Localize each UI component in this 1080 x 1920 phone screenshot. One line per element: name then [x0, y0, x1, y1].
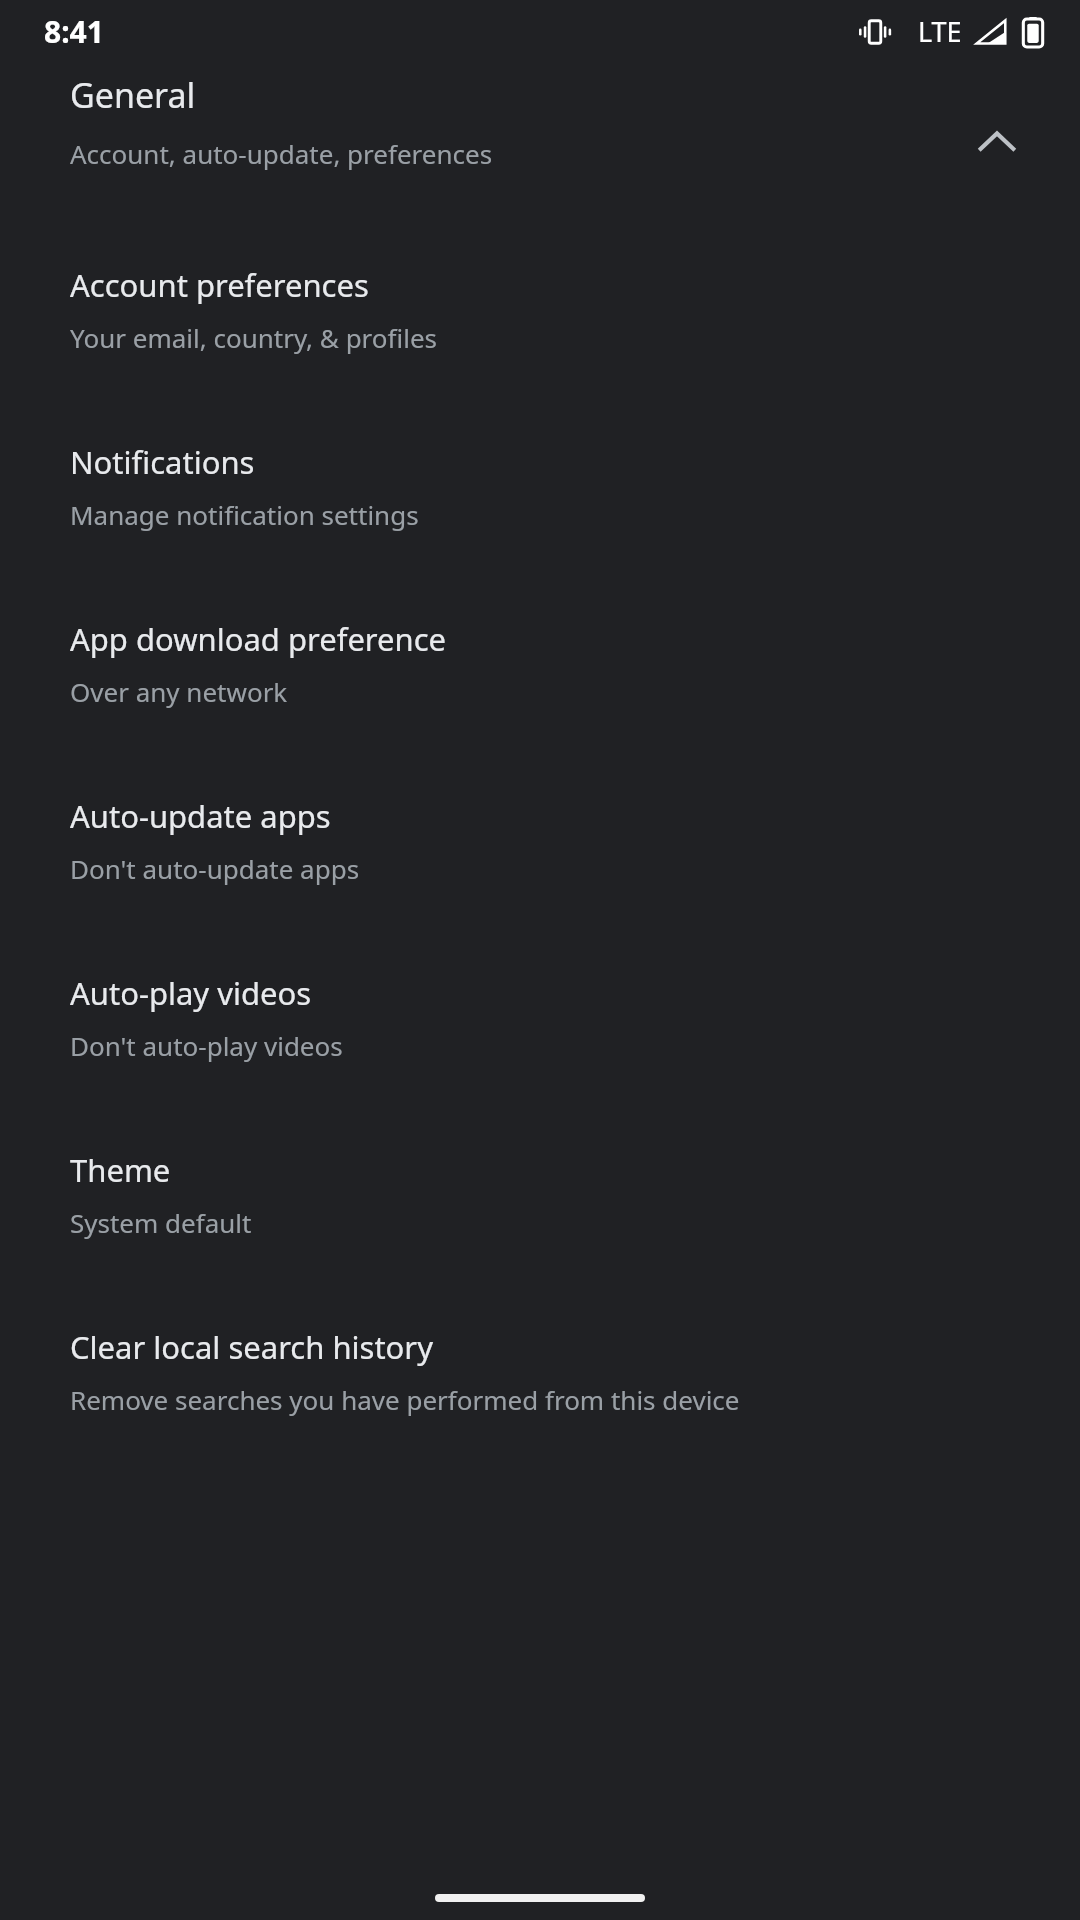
staticText: Don't auto-play videos	[70, 1028, 343, 1063]
button[interactable]: Clear local search history	[0, 1326, 1080, 1417]
button[interactable]: Theme	[0, 1149, 1080, 1240]
staticText: Clear local search history	[70, 1326, 433, 1368]
staticText: Account, auto-update, preferences	[70, 136, 493, 171]
button[interactable]: Notifications	[0, 441, 1080, 532]
staticText: 8:41	[44, 11, 104, 52]
button[interactable]: Account preferences	[0, 264, 1080, 355]
staticText: App download preference	[70, 618, 447, 660]
staticText: General	[70, 72, 196, 118]
staticText: System default	[70, 1205, 252, 1240]
staticText: Account preferences	[70, 264, 369, 306]
button[interactable]: Collapse General	[964, 110, 1030, 176]
staticText: Your email, country, & profiles	[70, 320, 438, 355]
staticText: Auto-update apps	[70, 795, 331, 837]
staticText: LTE	[918, 13, 962, 50]
button[interactable]: Auto-update apps	[0, 795, 1080, 886]
staticText: Notifications	[70, 441, 255, 483]
button[interactable]: General	[0, 62, 1080, 176]
staticText: Over any network	[70, 674, 288, 709]
staticText: Theme	[70, 1149, 171, 1191]
staticText: Don't auto-update apps	[70, 851, 360, 886]
button[interactable]: App download preference	[0, 618, 1080, 709]
staticText: Auto-play videos	[70, 972, 312, 1014]
staticText: Remove searches you have performed from …	[70, 1382, 740, 1417]
button[interactable]: Auto-play videos	[0, 972, 1080, 1063]
staticText: Manage notification settings	[70, 497, 419, 532]
